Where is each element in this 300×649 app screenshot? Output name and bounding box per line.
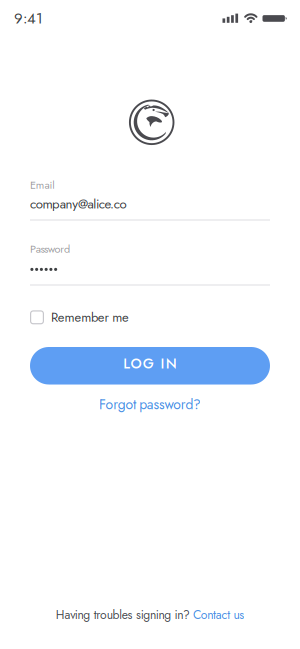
staticText: 9:41 <box>14 7 43 29</box>
staticText: Contact us <box>193 606 244 623</box>
staticText: Password <box>30 241 70 257</box>
button[interactable]: LOG IN <box>30 347 270 384</box>
staticText: LOG IN <box>123 354 177 374</box>
staticText: Remember me <box>51 308 129 327</box>
staticText: company@alice.co <box>30 194 126 213</box>
staticText: Forgot password? <box>99 394 201 414</box>
button[interactable]: Contact us <box>193 606 244 623</box>
button[interactable]: Remember me <box>30 308 129 327</box>
button[interactable]: Forgot password? <box>99 394 201 414</box>
staticText: Having troubles signing in? <box>56 606 190 623</box>
staticText: Email <box>30 177 55 193</box>
